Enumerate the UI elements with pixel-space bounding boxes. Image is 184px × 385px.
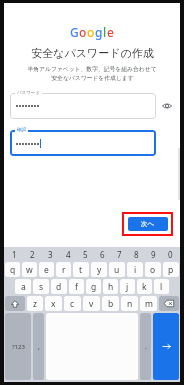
staticText: 安全なパスワードを作成します [51, 74, 134, 81]
staticText: o [79, 24, 87, 40]
button[interactable]: h [103, 279, 118, 294]
button[interactable]: 次へ [128, 217, 168, 231]
staticText: m [145, 298, 153, 310]
button[interactable]: Shift [5, 296, 25, 311]
button[interactable]: Backspace [159, 296, 179, 311]
staticText: z [33, 298, 37, 310]
staticText: o [150, 264, 156, 276]
staticText: v [89, 298, 94, 310]
staticText: 5 [83, 249, 88, 260]
button[interactable]: 8 [128, 249, 145, 260]
button[interactable]: g [86, 279, 101, 294]
button[interactable]: 7 [111, 249, 128, 260]
staticText: d [56, 281, 62, 293]
staticText: j [126, 281, 129, 293]
staticText: , [38, 342, 40, 352]
button[interactable] [10, 130, 156, 156]
button[interactable] [10, 93, 156, 119]
staticText: . [145, 342, 147, 352]
staticText: ?123 [12, 343, 25, 351]
button[interactable]: r [56, 262, 71, 277]
staticText: 2 [30, 249, 35, 260]
staticText: q [10, 264, 16, 276]
staticText: 0 [168, 249, 173, 260]
staticText: n [127, 298, 133, 310]
staticText: s [39, 281, 44, 293]
staticText: c [70, 298, 75, 310]
staticText: e [107, 24, 114, 40]
button[interactable]: i [127, 262, 143, 277]
staticText: r [62, 264, 66, 276]
staticText: パスワード [17, 90, 40, 96]
button[interactable]: l [154, 279, 169, 294]
staticText: 確認 [17, 127, 26, 133]
staticText: 4 [66, 249, 71, 260]
staticText: 3 [48, 249, 53, 260]
button[interactable]: c [64, 296, 81, 311]
button[interactable]: t [73, 262, 89, 277]
staticText: a [21, 281, 26, 293]
staticText: o [87, 24, 95, 40]
button[interactable]: d [51, 279, 67, 294]
staticText: 7 [117, 249, 122, 260]
button[interactable]: 1 [5, 249, 23, 260]
button[interactable]: n [121, 296, 138, 311]
button[interactable]: w [22, 262, 37, 277]
button[interactable]: パスワードを表示 [160, 99, 174, 113]
button[interactable]: 2 [23, 249, 41, 260]
staticText: 8 [134, 249, 139, 260]
button[interactable]: 5 [77, 249, 94, 260]
button[interactable]: o [145, 262, 161, 277]
staticText: h [108, 281, 114, 293]
button[interactable]: z [27, 296, 43, 311]
button[interactable]: v [83, 296, 100, 311]
staticText: u [114, 264, 120, 276]
staticText: w [26, 264, 33, 276]
staticText: l [160, 281, 163, 293]
button[interactable]: b [102, 296, 119, 311]
staticText: i [134, 264, 137, 276]
button[interactable]: 4 [59, 249, 77, 260]
staticText: t [79, 264, 83, 276]
button[interactable]: ?123 [5, 313, 31, 380]
staticText: 次へ [141, 220, 155, 228]
staticText: 1 [12, 249, 17, 260]
button[interactable]: e [39, 262, 54, 277]
button[interactable]: u [109, 262, 125, 277]
staticText: 9 [151, 249, 156, 260]
button[interactable]: 0 [162, 249, 179, 260]
staticText: G [70, 24, 79, 40]
button[interactable]: k [137, 279, 152, 294]
button[interactable]: j [120, 279, 135, 294]
staticText: 6 [100, 249, 105, 260]
button[interactable]: , [33, 313, 44, 380]
button[interactable]: f [69, 279, 84, 294]
staticText: b [108, 298, 114, 310]
button[interactable]: p [163, 262, 179, 277]
staticText: g [95, 24, 103, 40]
staticText: g [91, 281, 97, 293]
button[interactable]: m [140, 296, 157, 311]
staticText: 安全なパスワードの作成 [31, 46, 154, 60]
button[interactable]: 6 [94, 249, 111, 260]
staticText: x [51, 298, 56, 310]
button[interactable]: y [91, 262, 107, 277]
button[interactable]: s [33, 279, 49, 294]
button[interactable]: 3 [41, 249, 59, 260]
staticText: y [97, 264, 102, 276]
staticText: 半角アルファベット、数字、記号を組み合わせて [27, 65, 157, 72]
staticText: f [75, 281, 78, 293]
button[interactable]: Enter [153, 313, 179, 380]
staticText: p [168, 264, 174, 276]
staticText: k [142, 281, 147, 293]
staticText: e [44, 264, 49, 276]
button[interactable]: x [45, 296, 62, 311]
button[interactable]: q [5, 262, 20, 277]
button[interactable]: a [15, 279, 31, 294]
staticText: l [103, 24, 107, 40]
button[interactable]: 9 [145, 249, 162, 260]
